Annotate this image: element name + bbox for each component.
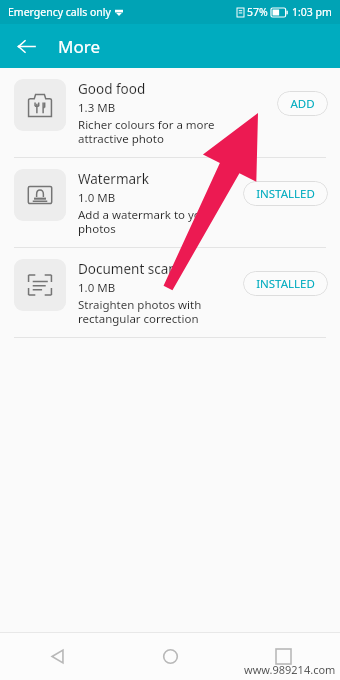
staticText: Good food <box>78 80 146 98</box>
button[interactable]: Recent apps <box>227 633 340 680</box>
staticText: www.989214.com <box>244 662 336 677</box>
staticText: 1.0 MB <box>78 280 116 296</box>
staticText: Watermark <box>78 170 149 188</box>
staticText: ADD <box>290 96 315 112</box>
button[interactable]: INSTALLED <box>243 181 328 206</box>
button[interactable]: INSTALLED <box>243 271 328 296</box>
staticText: INSTALLED <box>256 186 315 202</box>
button[interactable]: Good food <box>0 68 340 157</box>
staticText: Add a watermark to your photos <box>78 207 213 236</box>
staticText: Richer colours for a more attractive pho… <box>78 117 215 146</box>
staticText: More <box>58 35 100 58</box>
button[interactable]: Home <box>114 633 227 680</box>
staticText: Document scan <box>78 260 177 278</box>
staticText: INSTALLED <box>256 276 315 292</box>
button[interactable]: Back <box>0 633 114 680</box>
button[interactable]: Watermark <box>0 158 340 247</box>
staticText: 57% <box>247 5 268 19</box>
staticText: 1.0 MB <box>78 190 116 206</box>
button[interactable]: ADD <box>277 91 328 116</box>
button[interactable]: Back <box>8 28 44 64</box>
staticText: 1:03 pm <box>292 5 332 19</box>
staticText: Straighten photos with rectangular corre… <box>78 297 202 326</box>
staticText: Emergency calls only <box>8 5 111 19</box>
button[interactable]: Document scan <box>0 248 340 337</box>
staticText: 1.3 MB <box>78 100 116 116</box>
